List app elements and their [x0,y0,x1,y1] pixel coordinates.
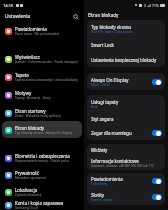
button[interactable]: Styl zegara [87,112,165,126]
staticText: Ekran blokady [15,125,45,131]
button[interactable]: Lokalizacja [2,183,82,200]
button[interactable]: Konta i kopia zapasowa [2,200,82,210]
staticText: Powiadomienia [91,176,123,182]
staticText: Konta i kopia zapasowa [15,200,64,206]
staticText: 2 [144,3,146,8]
button[interactable]: Skróty [87,189,165,205]
staticText: Menadżer uprawnień [15,176,46,180]
staticText: Tylko ikony [91,182,108,186]
staticText: Telefon, aparat [91,198,113,202]
staticText: Skróty [91,192,104,198]
staticText: Samsung Cloud [15,206,38,210]
staticText: Jasność · Ochrona wzroku · Pasek nawigac… [15,60,78,64]
staticText: Wyświetlacz [15,54,40,60]
staticText: Tapety · Animacje · Ikony [15,96,51,100]
button[interactable]: Typ blokady ekranu [87,20,165,38]
staticText: Brak [91,105,98,109]
staticText: Styl zegara [91,116,114,122]
button[interactable]: Zegar dla roamingu [87,126,165,140]
staticText: Motywy [15,90,32,96]
button[interactable]: Wyświetlacz [2,50,82,68]
staticText: Typ blokady ekranu [91,24,132,30]
staticText: Zadzwoń, zdrowie: +48 000 000 000 lub 11… [91,164,154,168]
button[interactable]: Toggle [152,178,162,184]
staticText: Kod PIN, Twarz, Odcisk palca [91,30,133,34]
staticText: 71% [152,3,159,8]
staticText: Panel stanu · Nie przeszkadzać [15,32,60,36]
staticText: Układ · Wskaźnik liczby aplikacji [15,114,61,118]
button[interactable]: Powiadomienia [87,173,165,189]
staticText: Żądania lokalizacji [15,193,42,197]
staticText: Prywatność [15,170,39,176]
staticText: Ekran blokady [88,12,119,18]
button[interactable]: Usługi tapety [87,95,165,112]
button[interactable]: Informacje kontaktowe [87,155,165,170]
staticText: Rozpoznawanie twarzy · Odcisk palca [15,159,69,163]
staticText: Ustawienia bezpiecznej blokady [91,57,157,63]
button[interactable]: Smart Lock [87,38,165,52]
staticText: Tapeta [15,72,29,78]
button[interactable]: Motywy [2,86,82,104]
button[interactable]: Toggle [152,194,162,200]
staticText: 14:15 [3,3,14,8]
staticText: Powiadomienia [15,26,47,32]
button[interactable]: Tapeta [2,68,82,86]
staticText: Ustawienia [5,13,31,20]
button[interactable]: Ustawienia bezpiecznej blokady [87,52,165,67]
button[interactable]: Search [72,13,80,21]
staticText: Zegar dla roamingu [91,130,132,136]
staticText: Lokalizacja [15,187,38,193]
staticText: 09:20 – 23:32 [91,83,110,87]
staticText: Ekran startowy [15,108,46,114]
staticText: Widżety [91,147,108,153]
button[interactable]: Ekran startowy [2,104,82,121]
button[interactable]: Widżety [87,144,165,155]
staticText: Biometria i zabezpieczenia [15,153,70,159]
button[interactable]: Always On Display [87,73,165,90]
button[interactable]: Toggle [152,130,162,136]
staticText: Tapeta ekranu startowego i ekranu blokad… [15,78,78,82]
staticText: Informacje kontaktowe [91,158,139,164]
staticText: Always On Display [91,77,129,83]
staticText: Typ blokady ekranu · Always On Display [15,131,73,135]
button[interactable]: Biometria i zabezpieczenia [2,149,82,166]
staticText: Smart Lock [91,42,114,48]
button[interactable]: Powiadomienia [2,24,82,38]
button[interactable]: Prywatność [2,166,82,183]
button[interactable]: Ekran blokady [2,121,82,138]
staticText: Usługi tapety [91,99,119,105]
button[interactable]: Toggle [152,79,162,85]
